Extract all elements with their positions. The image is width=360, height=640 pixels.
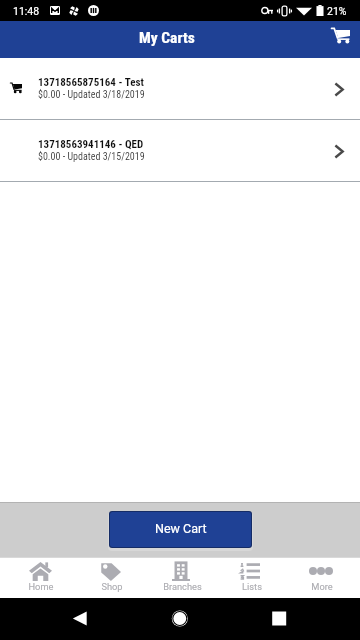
staticText: $0.00 - Updated 3/15/2019 [38, 151, 145, 163]
staticText: $0.00 - Updated 3/18/2019 [38, 89, 145, 101]
staticText: 13718565875164 - Test [38, 76, 144, 89]
staticText: 11:48 [13, 5, 40, 17]
staticText: More [311, 581, 333, 592]
staticText: New Cart [155, 521, 207, 536]
staticText: Branches [163, 581, 202, 592]
button[interactable]: More [287, 558, 357, 598]
staticText: Home [28, 581, 54, 592]
button[interactable]: Home [5, 558, 76, 598]
button[interactable]: Shopping cart [324, 24, 356, 56]
button[interactable]: Branches [147, 558, 217, 598]
staticText: My Carts [139, 29, 195, 47]
button[interactable]: 13718563941146 - QED [0, 120, 360, 181]
button[interactable]: New Cart [110, 512, 251, 547]
staticText: Shop [101, 581, 123, 592]
button[interactable]: 13718565875164 - Test [0, 58, 360, 119]
button[interactable]: Lists [217, 558, 287, 598]
staticText: 13718563941146 - QED [38, 138, 144, 151]
button[interactable]: Shop [76, 558, 147, 598]
staticText: Lists [242, 581, 262, 592]
staticText: 21% [327, 5, 347, 17]
